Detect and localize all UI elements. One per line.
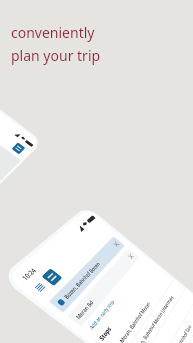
button[interactable]: POIs (132, 289, 193, 343)
staticText: 10:24 (20, 266, 38, 282)
staticText: conveniently (11, 23, 95, 42)
button[interactable]: Add an early stop (87, 298, 116, 331)
button[interactable]: DB Navigator (41, 268, 63, 286)
button[interactable]: Meran, Therme Meran (160, 308, 193, 343)
staticText: plan your trip (11, 46, 101, 65)
button[interactable]: Bozen, Bahnhof Bozen (49, 236, 125, 313)
button[interactable]: Menu (32, 280, 50, 296)
staticText: Stops (97, 325, 113, 342)
staticText: Bozen, Bahnhof Bozen (62, 260, 101, 300)
button[interactable]: Meran, Bahnhof Meran (102, 270, 174, 343)
button[interactable]: DB Navigator (11, 142, 26, 155)
button[interactable]: Meran, Bahnhof Meran Untermais (117, 280, 185, 343)
staticText: Meran, Therme Meran (173, 341, 193, 343)
staticText: Meran, Meran Bahnhof Taxi (159, 323, 192, 343)
button[interactable]: Meran, Untermais (188, 326, 193, 343)
staticText: Meran, Bahnhof Meran (118, 300, 151, 343)
staticText: Meran Bd (74, 299, 95, 321)
button[interactable]: Meran, Sinich Bahnhof (174, 317, 193, 343)
button[interactable]: Meran Bd (67, 248, 140, 327)
staticText: Meran, Bahnhof Meran Untermais (132, 294, 175, 343)
button[interactable]: Meran, Meran Bahnhof Taxi (146, 298, 193, 343)
